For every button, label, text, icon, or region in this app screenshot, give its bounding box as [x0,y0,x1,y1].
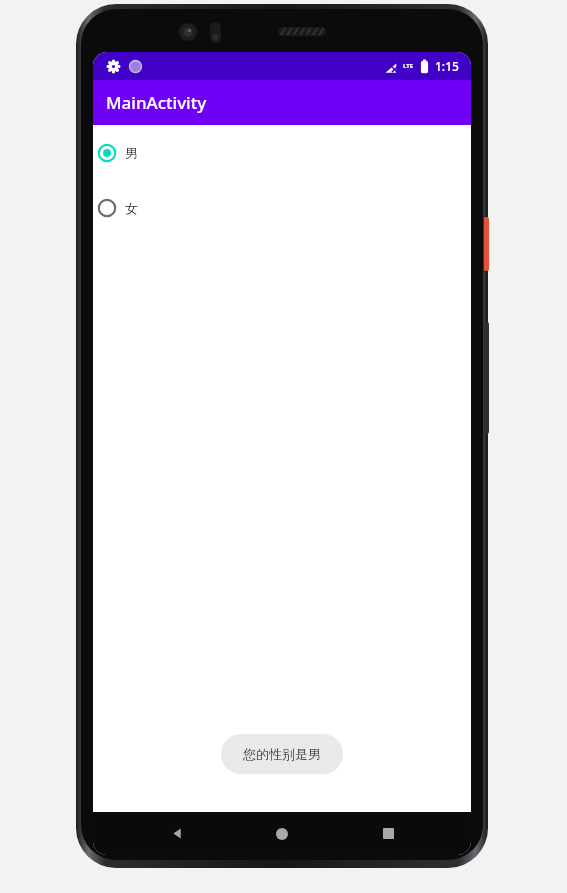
staticText: 男 [125,145,138,161]
staticText: 1:15 [435,58,459,74]
staticText: LTE [403,62,414,70]
button[interactable]: 女 [93,191,471,225]
other: Volume [484,322,489,434]
button[interactable]: 男 [93,136,471,170]
button[interactable]: Back [155,812,199,855]
staticText: 女 [125,200,138,216]
button[interactable]: Home [260,812,304,855]
button[interactable]: Recent apps [366,812,410,855]
button[interactable]: 您的性别是男 [221,734,343,774]
other: Power [484,217,489,271]
staticText: 您的性别是男 [243,746,321,762]
staticText: MainActivity [106,91,207,114]
